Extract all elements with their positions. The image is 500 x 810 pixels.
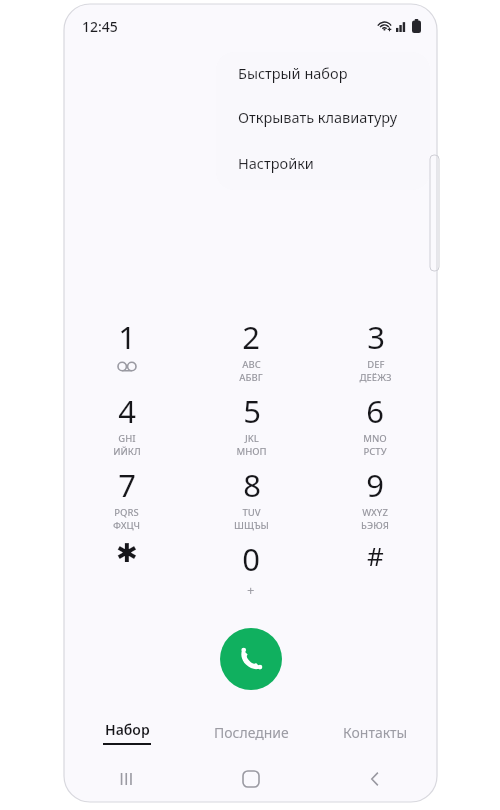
staticText: ФХЦЧ (113, 519, 140, 532)
staticText: 7 (118, 464, 136, 506)
button[interactable]: Recents (64, 756, 189, 802)
button[interactable]: 3 (313, 316, 437, 390)
staticText: MNO (363, 432, 387, 445)
button[interactable]: 9 (313, 464, 437, 538)
button[interactable]: 4 (64, 390, 189, 464)
staticText: 5 (243, 390, 261, 432)
button[interactable]: 8 (189, 464, 313, 538)
staticText: Открывать клавиатуру (238, 107, 398, 127)
button[interactable]: 1 (64, 316, 189, 390)
staticText: Быстрый набор (238, 63, 348, 83)
staticText: 6 (366, 390, 384, 432)
staticText: Настройки (238, 153, 314, 173)
staticText: ABC (242, 358, 261, 371)
staticText: 4 (118, 390, 136, 432)
staticText: Последние (214, 723, 289, 742)
button[interactable]: Набор (64, 710, 189, 754)
button[interactable]: 5 (189, 390, 313, 464)
button[interactable]: Последние (189, 710, 313, 754)
staticText: Набор (105, 720, 150, 739)
staticText: 9 (366, 464, 384, 506)
button[interactable]: 6 (313, 390, 437, 464)
staticText: 8 (243, 464, 261, 506)
button[interactable]: Back (313, 756, 437, 802)
button[interactable]: Быстрый набор (216, 52, 430, 94)
staticText: ШЩЪЫ (234, 519, 269, 532)
staticText: DEF (367, 358, 385, 371)
button[interactable]: Открывать клавиатуру (216, 94, 430, 140)
staticText: ДЕЁЖЗ (359, 371, 392, 384)
staticText: JKL (245, 432, 259, 445)
staticText: МНОП (236, 445, 267, 458)
button[interactable]: 7 (64, 464, 189, 538)
staticText: ИЙКЛ (113, 445, 141, 458)
staticText: GHI (118, 432, 136, 445)
button[interactable]: 2 (189, 316, 313, 390)
staticText: 1 (118, 316, 136, 358)
staticText: Контакты (343, 723, 408, 742)
staticText: PQRS (114, 506, 139, 519)
staticText: # (367, 538, 384, 573)
staticText: 12:45 (82, 17, 118, 36)
button[interactable]: # (313, 538, 437, 604)
staticText: TUV (242, 506, 261, 519)
button[interactable]: Call (220, 628, 282, 690)
staticText: 0 (242, 538, 260, 580)
button[interactable]: 0 (189, 538, 313, 604)
button[interactable]: Контакты (313, 710, 437, 754)
staticText: WXYZ (362, 506, 388, 519)
staticText: + (247, 581, 255, 599)
button[interactable]: Настройки (216, 140, 430, 186)
staticText: 3 (367, 316, 385, 358)
staticText: 2 (242, 316, 260, 358)
staticText: ✱ (116, 538, 138, 568)
button[interactable]: Home (189, 756, 313, 802)
staticText: ЬЭЮЯ (361, 519, 389, 532)
staticText: АБВГ (239, 371, 263, 384)
staticText: РСТУ (363, 445, 387, 458)
button[interactable]: ✱ (64, 538, 189, 604)
